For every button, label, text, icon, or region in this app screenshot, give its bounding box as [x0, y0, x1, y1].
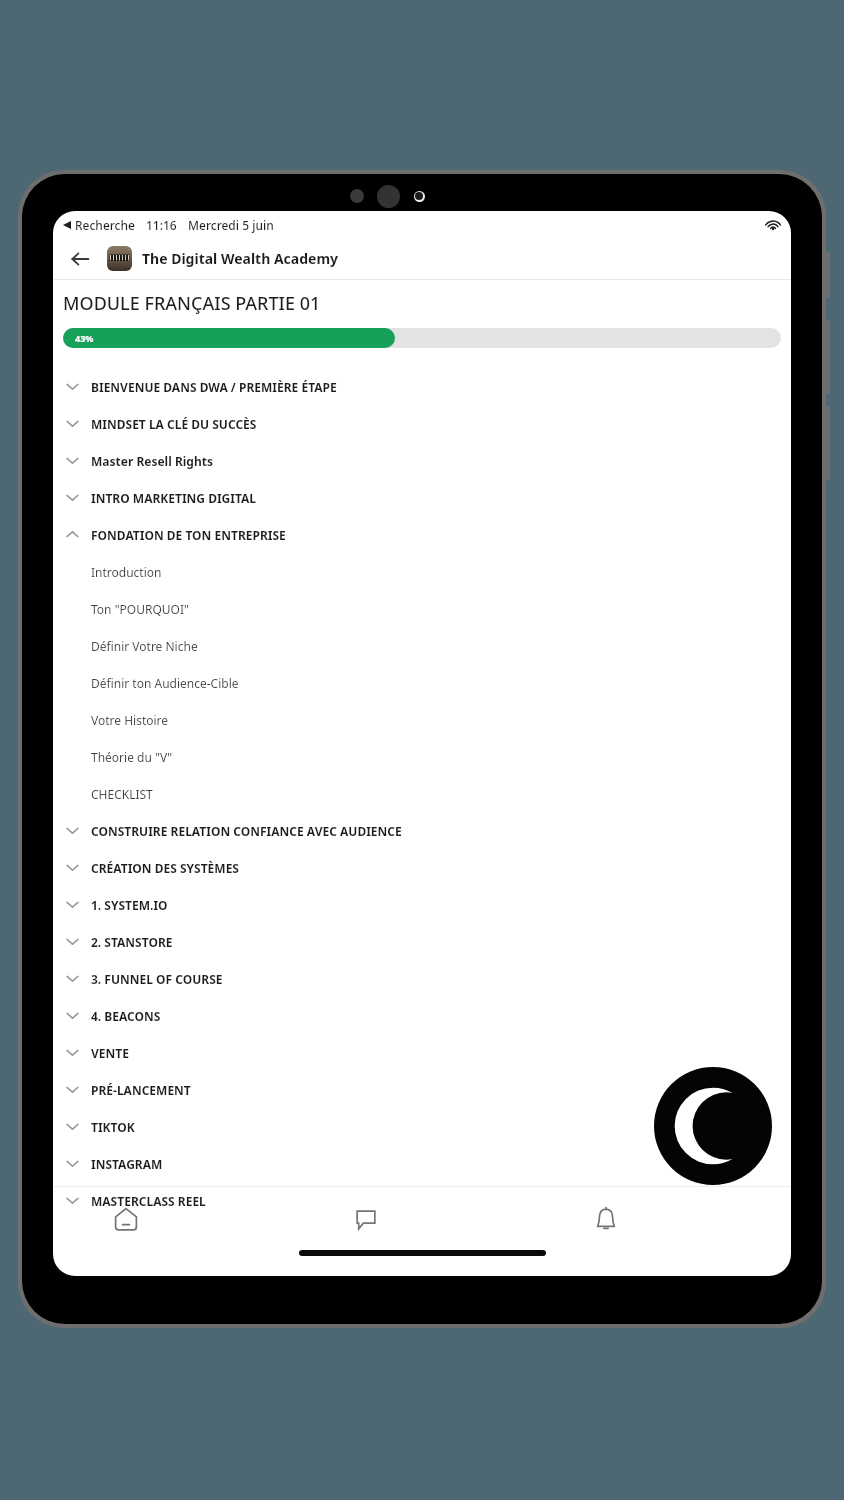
staticText: MODULE FRANÇAIS PARTIE 01 — [63, 291, 321, 316]
staticText: 2. STANSTORE — [91, 934, 173, 950]
button[interactable]: PRÉ-LANCEMENT — [53, 1071, 791, 1108]
button[interactable]: Notifications — [570, 1187, 642, 1250]
button[interactable]: Théorie du "V" — [53, 738, 791, 775]
button[interactable]: MASTERCLASS REEL — [53, 1182, 791, 1219]
staticText: MASTERCLASS REEL — [91, 1193, 206, 1209]
button[interactable]: 2. STANSTORE — [53, 923, 791, 960]
staticText: Introduction — [91, 564, 162, 580]
staticText: Ton "POURQUOI" — [91, 601, 189, 617]
button[interactable]: Ton "POURQUOI" — [53, 590, 791, 627]
button[interactable]: TIKTOK — [53, 1108, 791, 1145]
staticText: Recherche — [75, 217, 135, 233]
staticText: Définir ton Audience-Cible — [91, 675, 239, 691]
staticText: CHECKLIST — [91, 786, 153, 802]
button[interactable]: CONSTRUIRE RELATION CONFIANCE AVEC AUDIE… — [53, 812, 791, 849]
button[interactable]: 3. FUNNEL OF COURSE — [53, 960, 791, 997]
staticText: TIKTOK — [91, 1119, 135, 1135]
staticText: Mercredi 5 juin — [188, 217, 274, 233]
button[interactable]: App logo — [654, 1067, 772, 1185]
staticText: PRÉ-LANCEMENT — [91, 1082, 191, 1098]
staticText: FONDATION DE TON ENTREPRISE — [91, 527, 286, 543]
staticText: BIENVENUE DANS DWA / PREMIÈRE ÉTAPE — [91, 379, 337, 395]
button[interactable]: BIENVENUE DANS DWA / PREMIÈRE ÉTAPE — [53, 368, 791, 405]
button[interactable]: Master Resell Rights — [53, 442, 791, 479]
button[interactable]: INTRO MARKETING DIGITAL — [53, 479, 791, 516]
staticText: 11:16 — [146, 217, 177, 233]
button[interactable]: Home — [90, 1187, 162, 1250]
button[interactable]: FONDATION DE TON ENTREPRISE — [53, 516, 791, 553]
staticText: The Digital Wealth Academy — [142, 249, 339, 268]
button[interactable]: 4. BEACONS — [53, 997, 791, 1034]
button[interactable]: Définir ton Audience-Cible — [53, 664, 791, 701]
staticText: VENTE — [91, 1045, 129, 1061]
staticText: CRÉATION DES SYSTÈMES — [91, 860, 239, 876]
button[interactable]: Introduction — [53, 553, 791, 590]
button[interactable]: Back — [63, 242, 97, 276]
staticText: INSTAGRAM — [91, 1156, 163, 1172]
button[interactable]: 1. SYSTEM.IO — [53, 886, 791, 923]
staticText: 4. BEACONS — [91, 1008, 161, 1024]
button[interactable]: INSTAGRAM — [53, 1145, 791, 1182]
staticText: 3. FUNNEL OF COURSE — [91, 971, 223, 987]
button[interactable]: CHECKLIST — [53, 775, 791, 812]
button[interactable]: Définir Votre Niche — [53, 627, 791, 664]
staticText: 43% — [75, 332, 94, 344]
button[interactable]: VENTE — [53, 1034, 791, 1071]
staticText: MINDSET LA CLÉ DU SUCCÈS — [91, 416, 257, 432]
staticText: Théorie du "V" — [91, 749, 173, 765]
staticText: Master Resell Rights — [91, 453, 213, 469]
staticText: 1. SYSTEM.IO — [91, 897, 168, 913]
button[interactable]: Messages — [330, 1187, 402, 1250]
staticText: Définir Votre Niche — [91, 638, 198, 654]
staticText: Votre Histoire — [91, 712, 169, 728]
button[interactable]: Votre Histoire — [53, 701, 791, 738]
button[interactable]: MINDSET LA CLÉ DU SUCCÈS — [53, 405, 791, 442]
staticText: CONSTRUIRE RELATION CONFIANCE AVEC AUDIE… — [91, 823, 402, 839]
staticText: INTRO MARKETING DIGITAL — [91, 490, 257, 506]
button[interactable]: CRÉATION DES SYSTÈMES — [53, 849, 791, 886]
